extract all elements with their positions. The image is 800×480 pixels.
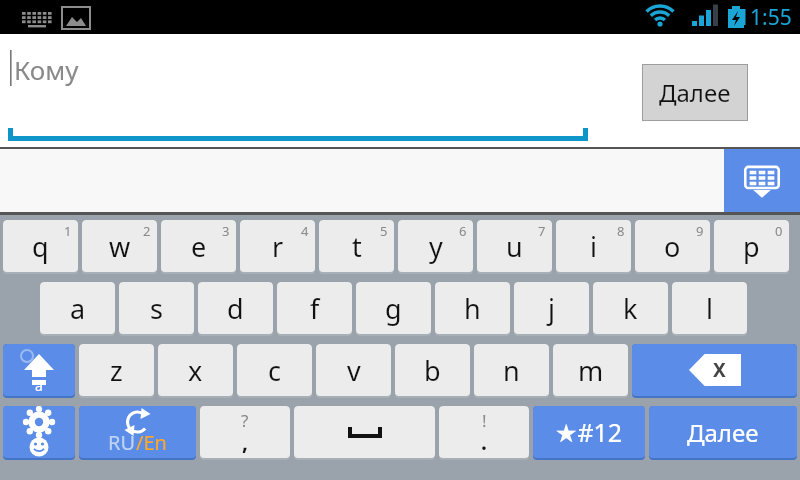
button[interactable]: ? [200,406,290,458]
button[interactable]: d [198,282,273,334]
button[interactable]: e [161,220,236,272]
staticText: v [347,352,361,389]
staticText: j [548,290,555,327]
staticText: s [150,290,163,327]
button[interactable]: k [593,282,668,334]
staticText: p [743,228,760,265]
button[interactable]: ! [439,406,529,458]
staticText: x [188,352,203,389]
staticText: 8 [617,222,625,240]
button[interactable]: m [553,344,628,396]
staticText: e [191,228,207,265]
staticText: w [109,228,131,265]
button[interactable]: n [474,344,549,396]
button[interactable]: Далее [649,406,797,458]
button[interactable]: Hide keyboard [724,149,800,212]
button[interactable]: c [237,344,312,396]
staticText: Далее [659,76,731,109]
staticText: d [227,290,244,327]
button[interactable]: g [356,282,431,334]
staticText: ! [482,409,487,432]
button[interactable]: Далее [643,65,747,120]
button[interactable]: w [82,220,157,272]
button[interactable]: h [435,282,510,334]
button[interactable]: Backspace [632,344,797,396]
staticText: 2 [143,222,151,240]
staticText: 7 [538,222,546,240]
staticText: z [110,352,123,389]
button[interactable]: o [635,220,710,272]
button[interactable]: b [395,344,470,396]
staticText: y [429,228,443,265]
staticText: 4 [301,222,309,240]
button[interactable]: a [40,282,115,334]
staticText: Кому [14,52,79,87]
button[interactable]: y [398,220,473,272]
staticText: 11:55 [738,3,792,32]
staticText: X [713,357,726,383]
staticText: q [32,228,49,265]
staticText: 6 [459,222,467,240]
button[interactable]: i [556,220,631,272]
staticText: a [35,376,43,395]
button[interactable]: u [477,220,552,272]
staticText: 3 [222,222,230,240]
staticText: o [664,228,681,265]
staticText: i [590,228,597,265]
staticText: k [623,290,638,327]
staticText: m [578,352,604,389]
staticText: f [310,290,320,327]
staticText: n [503,352,520,389]
button[interactable]: t [319,220,394,272]
button[interactable]: r [240,220,315,272]
staticText: Далее [687,416,759,449]
staticText: . [481,428,487,457]
button[interactable]: v [316,344,391,396]
staticText: h [464,290,481,327]
button[interactable]: z [79,344,154,396]
button[interactable]: ★#12 [533,406,645,458]
staticText: c [268,352,281,389]
button[interactable]: RU [79,406,196,458]
staticText: 9 [696,222,704,240]
staticText: g [385,290,402,327]
button[interactable]: Settings and emoji [3,406,75,458]
button[interactable]: q [3,220,78,272]
button[interactable]: j [514,282,589,334]
staticText: /En [136,429,167,456]
staticText: 0 [775,222,783,240]
staticText: 5 [380,222,388,240]
staticText: ★#12 [555,415,623,449]
button[interactable]: p [714,220,789,272]
staticText: r [272,228,284,265]
staticText: ? [241,409,249,432]
staticText: l [706,290,713,327]
button[interactable]: l [672,282,747,334]
button[interactable]: Shift [3,344,75,396]
staticText: a [70,290,86,327]
staticText: b [424,352,441,389]
staticText: u [506,228,523,265]
staticText: 1 [64,222,72,240]
staticText: t [352,228,362,265]
button[interactable]: f [277,282,352,334]
button[interactable]: Space [294,406,435,458]
staticText: RU [108,429,136,456]
button[interactable]: s [119,282,194,334]
button[interactable]: x [158,344,233,396]
staticText: , [242,428,248,457]
